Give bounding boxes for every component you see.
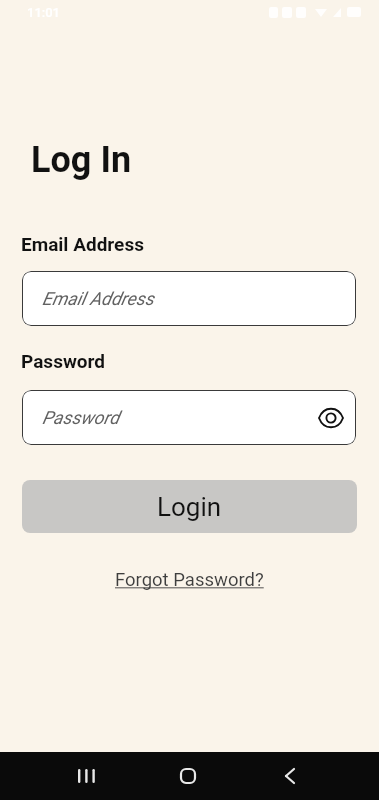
staticText: 11:01 [27,5,61,20]
staticText: Password [21,350,106,372]
button[interactable]: Email Address [22,271,356,326]
button[interactable]: Login [22,480,357,533]
button[interactable] [316,403,346,433]
staticText: Login [157,492,222,522]
button[interactable]: Forgot Password? [115,569,264,591]
staticText: Password [42,407,120,428]
staticText: Log In [31,139,132,181]
staticText: Email Address [21,233,144,255]
button[interactable]: Password [22,390,356,445]
button[interactable] [171,759,205,793]
staticText: Email Address [42,288,154,309]
button[interactable] [69,759,103,793]
button[interactable] [273,759,307,793]
